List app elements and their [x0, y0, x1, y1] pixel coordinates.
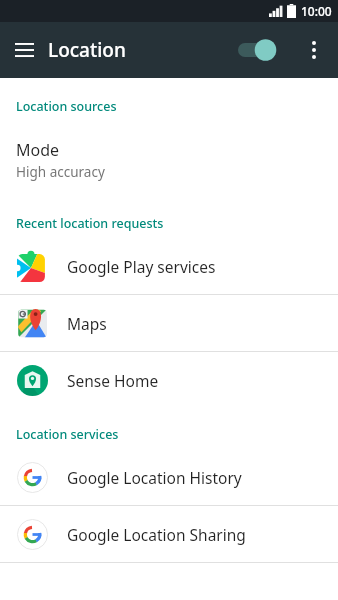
- staticText: Google Location History: [67, 467, 242, 488]
- staticText: Sense Home: [67, 370, 159, 391]
- staticText: Location: [48, 37, 126, 63]
- button[interactable]: Google Play services: [0, 238, 338, 294]
- button[interactable]: Location on/off toggle: [234, 30, 286, 70]
- button[interactable]: Sense Home: [0, 352, 338, 408]
- button[interactable]: Maps: [0, 295, 338, 351]
- button[interactable]: More options: [294, 30, 334, 70]
- staticText: Maps: [67, 313, 107, 334]
- staticText: Google Play services: [67, 256, 216, 277]
- staticText: High accuracy: [16, 163, 105, 181]
- button[interactable]: Google Location Sharing: [0, 506, 338, 562]
- staticText: Location services: [16, 426, 119, 443]
- staticText: Location sources: [16, 98, 117, 115]
- button[interactable]: Mode: [0, 121, 338, 201]
- staticText: 10:00: [301, 3, 332, 19]
- button[interactable]: Google Location History: [0, 449, 338, 505]
- staticText: Mode: [16, 139, 60, 161]
- staticText: Recent location requests: [16, 215, 164, 232]
- button[interactable]: Open navigation drawer: [4, 30, 44, 70]
- staticText: Google Location Sharing: [67, 524, 246, 545]
